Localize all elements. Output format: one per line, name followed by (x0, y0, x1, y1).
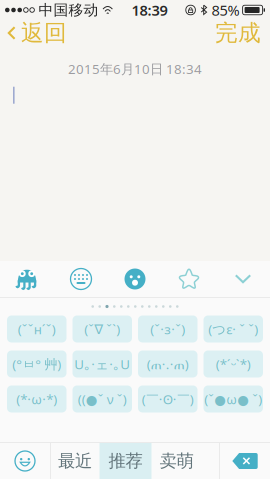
button[interactable]: (￣·ʘ·￣) (138, 385, 197, 412)
button[interactable]: Delete (220, 443, 270, 479)
staticText: 返回 (21, 19, 67, 47)
button[interactable]: 完成 (207, 20, 270, 46)
button[interactable]: Favorites (162, 261, 216, 297)
staticText: 卖萌 (159, 450, 193, 472)
staticText: (°ㅂ° 艸) (12, 355, 61, 373)
staticText: (*ˊᵕˋ*) (216, 355, 251, 373)
staticText: 中国移动 (38, 1, 98, 19)
button[interactable]: Emoji keyboard (0, 443, 50, 479)
button[interactable]: 返回 (0, 20, 75, 46)
button[interactable]: (°ㅂ° 艸) (7, 350, 66, 377)
staticText: U｡·ェ·｡U (74, 355, 130, 373)
staticText: (ˇ∇ ˇ`) (84, 320, 120, 338)
staticText: 推荐 (108, 450, 142, 472)
button[interactable]: (ˇˇн´ˇ) (7, 315, 66, 342)
staticText: 85% (212, 0, 240, 20)
button[interactable]: (ˇ·ɜ·ˇ) (138, 315, 197, 342)
staticText: (ˇˇн´ˇ) (18, 320, 56, 338)
button[interactable]: Keyboard (54, 261, 108, 297)
staticText: ((●ˇ ν ˇ) (78, 390, 127, 408)
staticText: 2015年6月10日 18:34 (68, 60, 202, 78)
staticText: (ˇ·ɜ·ˇ) (150, 320, 185, 338)
button[interactable]: 卖萌 (151, 443, 201, 479)
button[interactable]: (ˇ∇ ˇ`) (72, 315, 132, 342)
button[interactable]: (ˇ●ω● ˇ) (203, 385, 263, 412)
button[interactable]: (つε· ˇ ˇ) (203, 315, 263, 342)
button[interactable]: 推荐 (99, 443, 151, 479)
staticText: (つε· ˇ ˇ) (208, 320, 258, 338)
button[interactable]: Hide keyboard (216, 261, 270, 297)
staticText: 18:39 (131, 0, 167, 20)
button[interactable]: Kaomoji (0, 261, 54, 297)
button[interactable]: ((●ˇ ν ˇ) (72, 385, 132, 412)
button[interactable]: (*ˊᵕˋ*) (203, 350, 263, 377)
staticText: (*·ω·*) (16, 390, 57, 408)
button[interactable]: U｡·ェ·｡U (72, 350, 132, 377)
button[interactable]: (ጠ·.·ጠ) (138, 350, 197, 377)
button[interactable]: 最近 (50, 443, 99, 479)
staticText: 完成 (215, 19, 261, 47)
button[interactable]: Emoji (108, 261, 162, 297)
staticText: (ˇ●ω● ˇ) (204, 390, 262, 408)
button[interactable]: (*·ω·*) (7, 385, 66, 412)
staticText: (￣·ʘ·￣) (142, 390, 194, 408)
staticText: 最近 (58, 450, 92, 472)
staticText: (ጠ·.·ጠ) (147, 355, 189, 373)
